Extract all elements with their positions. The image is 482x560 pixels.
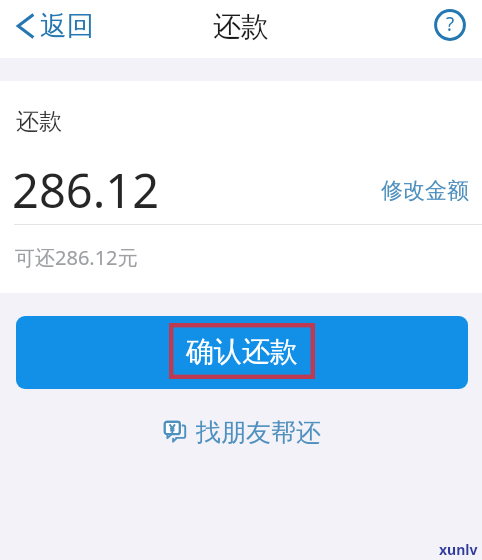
button[interactable]: 返回: [12, 3, 102, 49]
staticText: 确认还款: [186, 334, 298, 369]
staticText: 可还286.12元: [15, 244, 138, 271]
button[interactable]: Help: [432, 7, 468, 43]
staticText: 找朋友帮还: [196, 417, 321, 448]
button[interactable]: 确认还款: [16, 316, 468, 389]
staticText: 286.12: [12, 158, 160, 222]
button[interactable]: 修改金额: [381, 177, 469, 205]
staticText: xunlv: [439, 540, 478, 559]
staticText: 修改金额: [381, 177, 469, 205]
button[interactable]: 找朋友帮还: [158, 413, 325, 452]
staticText: 返回: [40, 9, 94, 43]
staticText: 还款: [213, 9, 269, 44]
staticText: ?: [446, 11, 455, 37]
staticText: 还款: [16, 107, 62, 136]
